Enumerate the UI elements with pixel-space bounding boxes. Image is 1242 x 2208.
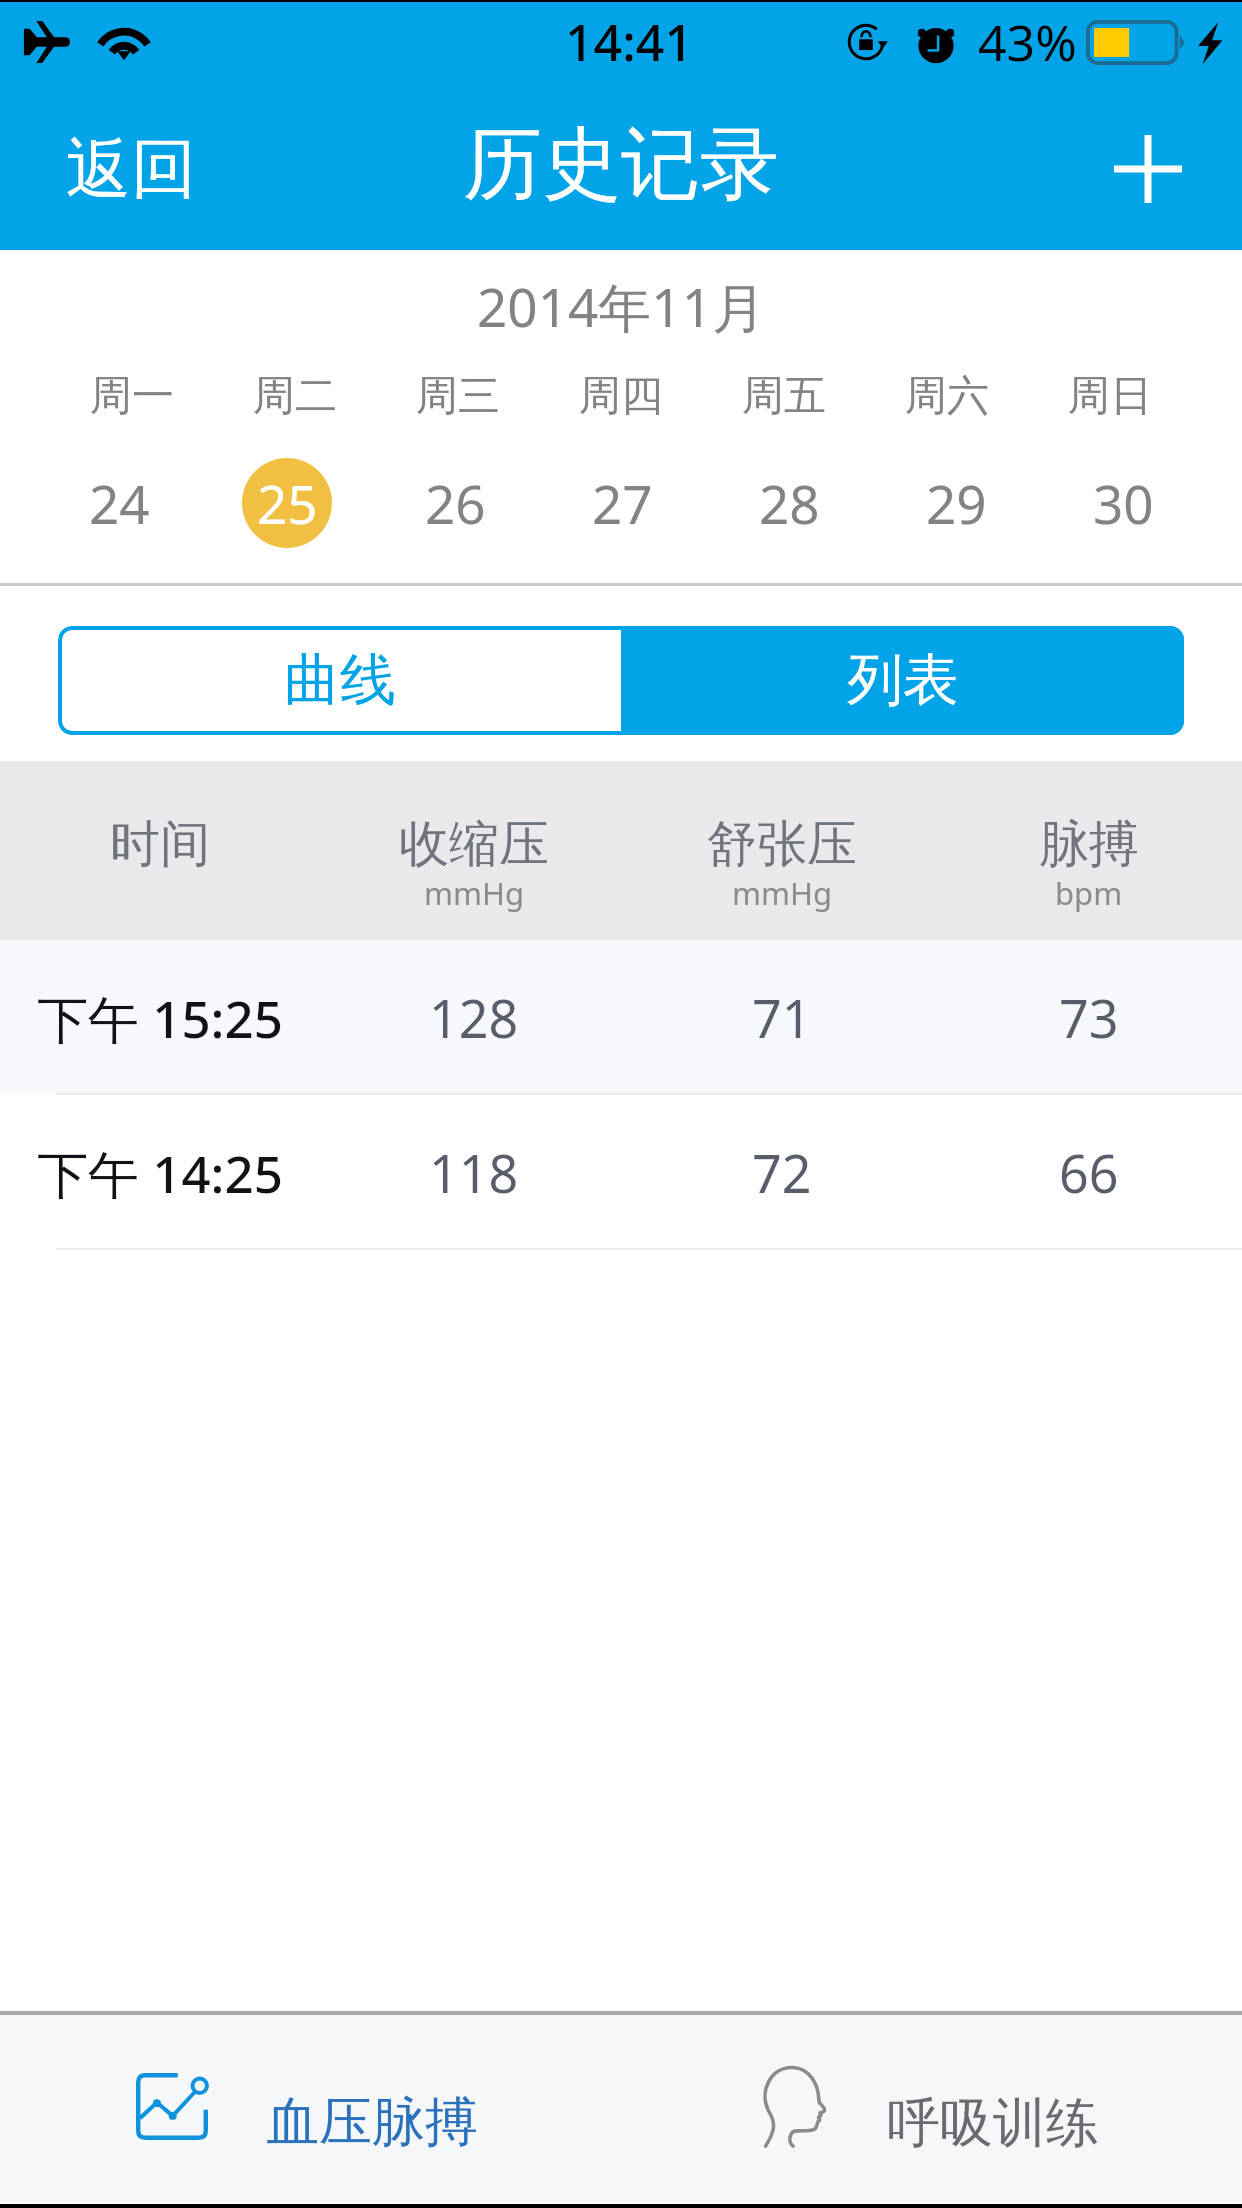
- staticText: 28: [759, 467, 820, 539]
- button[interactable]: 29: [873, 456, 1040, 550]
- button[interactable]: 25: [203, 456, 371, 550]
- staticText: 舒张压: [707, 813, 857, 876]
- button[interactable]: 列表: [621, 626, 1184, 735]
- staticText: 收缩压: [399, 813, 549, 876]
- staticText: mmHg: [424, 872, 525, 914]
- button[interactable]: 返回: [46, 112, 216, 226]
- button[interactable]: 26: [371, 456, 539, 550]
- button[interactable]: 28: [706, 456, 873, 550]
- staticText: 周六: [905, 370, 989, 422]
- staticText: 43%: [978, 8, 1077, 76]
- staticText: 呼吸训练: [887, 2090, 1099, 2157]
- staticText: 周二: [253, 370, 337, 422]
- staticText: 27: [592, 467, 653, 539]
- staticText: 周一: [90, 370, 174, 422]
- button[interactable]: 曲线: [58, 626, 621, 735]
- button[interactable]: 下午 14:25: [0, 1095, 1242, 1250]
- staticText: 列表: [847, 645, 959, 716]
- staticText: 66: [1059, 1137, 1119, 1208]
- staticText: 14:41: [565, 8, 693, 76]
- staticText: 周五: [742, 370, 826, 422]
- staticText: 2014年11月: [0, 270, 1242, 342]
- staticText: 29: [926, 467, 987, 539]
- button[interactable]: 24: [35, 456, 203, 550]
- staticText: 24: [89, 467, 150, 539]
- staticText: 周四: [579, 370, 663, 422]
- staticText: 72: [752, 1137, 812, 1208]
- staticText: 71: [752, 982, 812, 1053]
- button[interactable]: 血压脉搏: [0, 2015, 621, 2202]
- staticText: 118: [429, 1137, 519, 1208]
- staticText: 26: [425, 467, 486, 539]
- staticText: 128: [429, 982, 519, 1053]
- staticText: 周三: [416, 370, 500, 422]
- staticText: 曲线: [284, 645, 396, 716]
- staticText: mmHg: [732, 872, 833, 914]
- staticText: bpm: [1055, 872, 1123, 914]
- button[interactable]: 下午 15:25: [0, 940, 1242, 1095]
- staticText: 下午 15:25: [37, 983, 283, 1053]
- button[interactable]: 30: [1040, 456, 1207, 550]
- staticText: 73: [1059, 982, 1119, 1053]
- staticText: 返回: [66, 128, 196, 210]
- button[interactable]: 呼吸训练: [621, 2015, 1242, 2202]
- staticText: 脉搏: [1039, 813, 1139, 876]
- staticText: 30: [1093, 467, 1154, 539]
- staticText: 时间: [110, 813, 210, 876]
- staticText: 历史记录: [463, 115, 779, 215]
- staticText: 周日: [1068, 370, 1152, 422]
- staticText: 血压脉搏: [266, 2089, 478, 2156]
- staticText: 下午 14:25: [37, 1138, 283, 1208]
- button[interactable]: Add: [1098, 119, 1198, 219]
- button[interactable]: 27: [539, 456, 706, 550]
- staticText: 25: [257, 467, 318, 539]
